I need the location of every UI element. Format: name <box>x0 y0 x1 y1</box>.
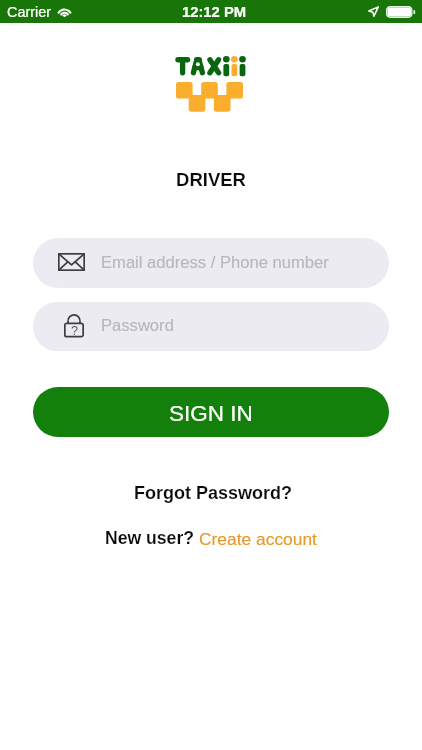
other: Location <box>368 6 379 17</box>
button[interactable]: SIGN IN <box>33 387 389 437</box>
other: Battery full <box>386 6 415 18</box>
staticText: SIGN IN <box>169 401 253 426</box>
staticText: Create account <box>199 529 317 548</box>
staticText: Email address / Phone number <box>101 253 329 272</box>
staticText: Carrier <box>7 4 51 20</box>
staticText: 12:12 PM <box>3 4 422 21</box>
button[interactable]: ? <box>33 302 389 351</box>
button[interactable]: Create account <box>199 529 317 548</box>
staticText: Password <box>101 316 174 335</box>
button[interactable]: Email address / Phone number <box>33 238 389 288</box>
button[interactable]: Forgot Password? <box>2 480 422 506</box>
staticText: New user? <box>105 528 199 548</box>
staticText: ? <box>71 324 79 338</box>
staticText: DRIVER <box>0 169 422 190</box>
staticText: Forgot Password? <box>134 483 293 503</box>
